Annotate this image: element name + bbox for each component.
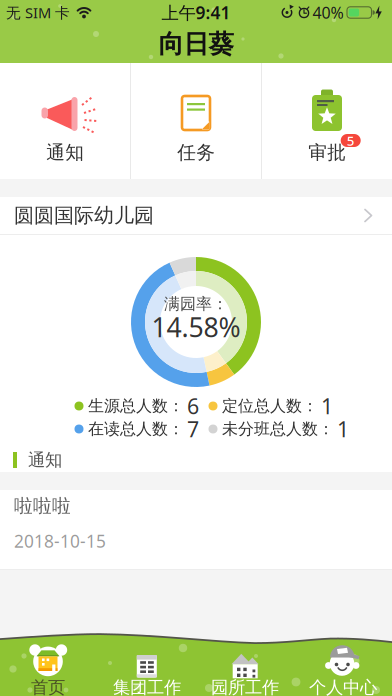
staticText: 通知 xyxy=(28,449,62,471)
staticText: 任务 xyxy=(177,141,215,164)
staticText: 审批 xyxy=(308,141,346,164)
staticText: 在读总人数： xyxy=(88,419,184,439)
button[interactable]: 5 xyxy=(262,63,392,179)
staticText: 1 xyxy=(321,392,333,420)
staticText: 上午9:41 xyxy=(161,1,230,24)
staticText: 无 SIM 卡 xyxy=(6,3,70,22)
staticText: 定位总人数： xyxy=(222,396,318,416)
staticText: 7 xyxy=(187,415,199,443)
staticText: 通知 xyxy=(46,141,84,164)
staticText: 6 xyxy=(187,392,199,420)
staticText: 圆圆国际幼儿园 xyxy=(14,203,154,228)
staticText: 满园率： xyxy=(164,294,228,314)
staticText: 啦啦啦 xyxy=(14,494,71,517)
button[interactable]: 啦啦啦 xyxy=(0,490,392,570)
staticText: 集团工作 xyxy=(113,677,181,696)
button[interactable]: 任务 xyxy=(131,63,261,179)
staticText: 1 xyxy=(337,415,349,443)
staticText: 生源总人数： xyxy=(88,396,184,416)
staticText: 40% xyxy=(312,2,343,23)
button[interactable]: 通知 xyxy=(0,63,130,179)
staticText: 个人中心 xyxy=(309,677,377,696)
staticText: 首页 xyxy=(31,677,65,696)
staticText: 未分班总人数： xyxy=(222,419,334,439)
staticText: 14.58% xyxy=(151,309,240,345)
button[interactable]: 园所工作 xyxy=(196,640,294,696)
button[interactable]: 集团工作 xyxy=(98,640,196,696)
staticText: 园所工作 xyxy=(211,677,279,696)
staticText: 2018-10-15 xyxy=(14,529,106,552)
staticText: 向日葵 xyxy=(158,28,233,59)
staticText: 5 xyxy=(347,132,355,149)
button[interactable]: 圆圆国际幼儿园 xyxy=(0,197,392,234)
button[interactable]: 首页 xyxy=(0,640,98,696)
button[interactable]: 个人中心 xyxy=(294,640,392,696)
